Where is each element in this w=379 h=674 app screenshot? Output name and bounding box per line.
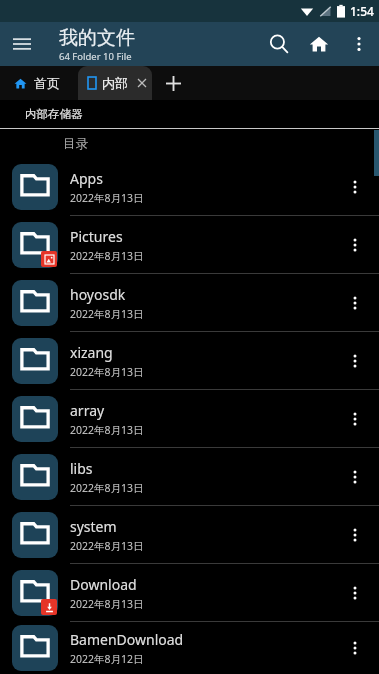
button[interactable]: Apps: [0, 158, 379, 215]
staticText: libs: [70, 459, 93, 478]
button[interactable]: Item options: [337, 622, 373, 674]
button[interactable]: Home: [299, 24, 339, 64]
staticText: BamenDownload: [70, 630, 184, 649]
button[interactable]: Close tab: [134, 75, 150, 91]
staticText: 2022年8月13日: [70, 249, 144, 263]
staticText: 1:54: [350, 3, 374, 19]
staticText: 首页: [34, 75, 60, 91]
button[interactable]: Item options: [337, 216, 373, 273]
button[interactable]: Item options: [337, 274, 373, 331]
button[interactable]: Item options: [337, 564, 373, 621]
staticText: 我的文件: [59, 26, 135, 50]
button[interactable]: libs: [0, 448, 379, 505]
staticText: Download: [70, 575, 137, 594]
staticText: 64 Folder 10 File: [59, 50, 132, 63]
staticText: 2022年8月13日: [70, 597, 144, 611]
button[interactable]: Item options: [337, 390, 373, 447]
staticText: 2022年8月13日: [70, 481, 144, 495]
button[interactable]: 内部: [78, 66, 152, 100]
button[interactable]: Menu: [0, 22, 44, 66]
staticText: 目录: [63, 136, 88, 152]
staticText: Pictures: [70, 227, 123, 246]
button[interactable]: Pictures: [0, 216, 379, 273]
staticText: system: [70, 517, 117, 536]
staticText: Apps: [70, 169, 103, 188]
staticText: 2022年8月13日: [70, 365, 144, 379]
staticText: array: [70, 401, 105, 420]
button[interactable]: array: [0, 390, 379, 447]
button[interactable]: hoyosdk: [0, 274, 379, 331]
button[interactable]: Item options: [337, 158, 373, 215]
button[interactable]: New tab: [152, 66, 194, 100]
button[interactable]: Item options: [337, 506, 373, 563]
staticText: xizang: [70, 343, 113, 362]
button[interactable]: system: [0, 506, 379, 563]
button[interactable]: Download: [0, 564, 379, 621]
button[interactable]: 内部存储器: [0, 100, 379, 128]
button[interactable]: Item options: [337, 332, 373, 389]
button[interactable]: 首页: [0, 66, 78, 100]
staticText: 2022年8月13日: [70, 191, 144, 205]
staticText: 2022年8月13日: [70, 423, 144, 437]
button[interactable]: More options: [339, 24, 379, 64]
button[interactable]: Item options: [337, 448, 373, 505]
staticText: 2022年8月12日: [70, 652, 144, 666]
staticText: 内部存储器: [25, 107, 83, 121]
button[interactable]: Search: [259, 24, 299, 64]
button[interactable]: BamenDownload: [0, 622, 379, 674]
staticText: hoyosdk: [70, 285, 126, 304]
staticText: 内部: [102, 75, 128, 91]
staticText: 2022年8月13日: [70, 539, 144, 553]
button[interactable]: xizang: [0, 332, 379, 389]
staticText: 2022年8月13日: [70, 307, 144, 321]
